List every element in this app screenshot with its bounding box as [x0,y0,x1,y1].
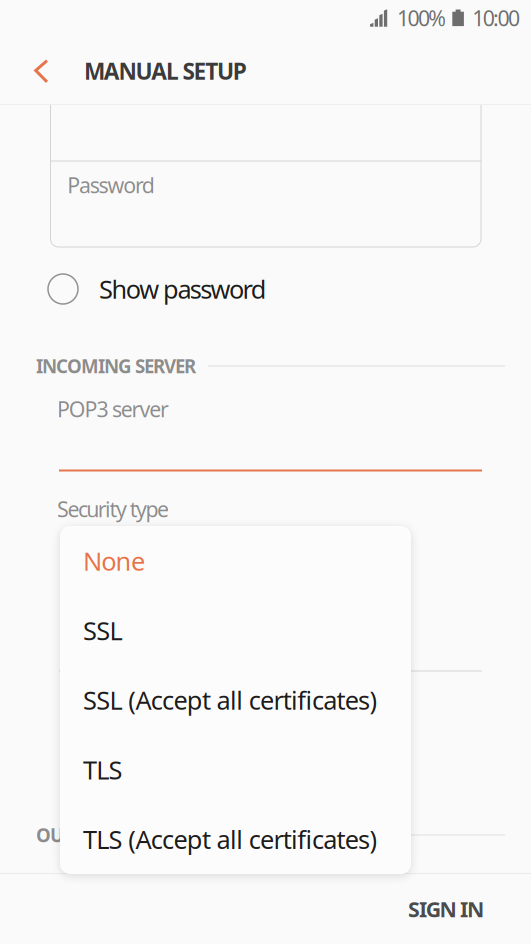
staticText: SSL (Accept all certificates) [83,683,377,717]
button[interactable]: Show password [0,263,420,315]
button[interactable]: None [60,526,411,596]
staticText: 100% [397,4,446,32]
button[interactable]: TLS [60,735,411,804]
button[interactable]: SIGN IN [391,881,501,937]
staticText: TLS [83,753,123,786]
staticText: MANUAL SETUP [84,56,247,86]
staticText: None [83,544,145,578]
staticText: SIGN IN [408,895,484,923]
staticText: 10:00 [472,4,520,32]
staticText: Security type [57,495,169,523]
button[interactable]: Back [13,43,69,99]
staticText: INCOMING SERVER [36,354,196,378]
staticText: Password [67,171,155,199]
button[interactable]: SSL [60,596,411,665]
staticText: TLS (Accept all certificates) [83,822,377,856]
button[interactable]: SSL (Accept all certificates) [60,665,411,735]
staticText: OUTGOING SERVER [36,823,197,847]
staticText: POP3 server [57,395,169,423]
button[interactable]: TLS (Accept all certificates) [60,804,411,874]
button[interactable]: MANUAL SETUP [84,43,264,99]
staticText: Show password [99,272,267,306]
staticText: SSL [83,614,123,647]
